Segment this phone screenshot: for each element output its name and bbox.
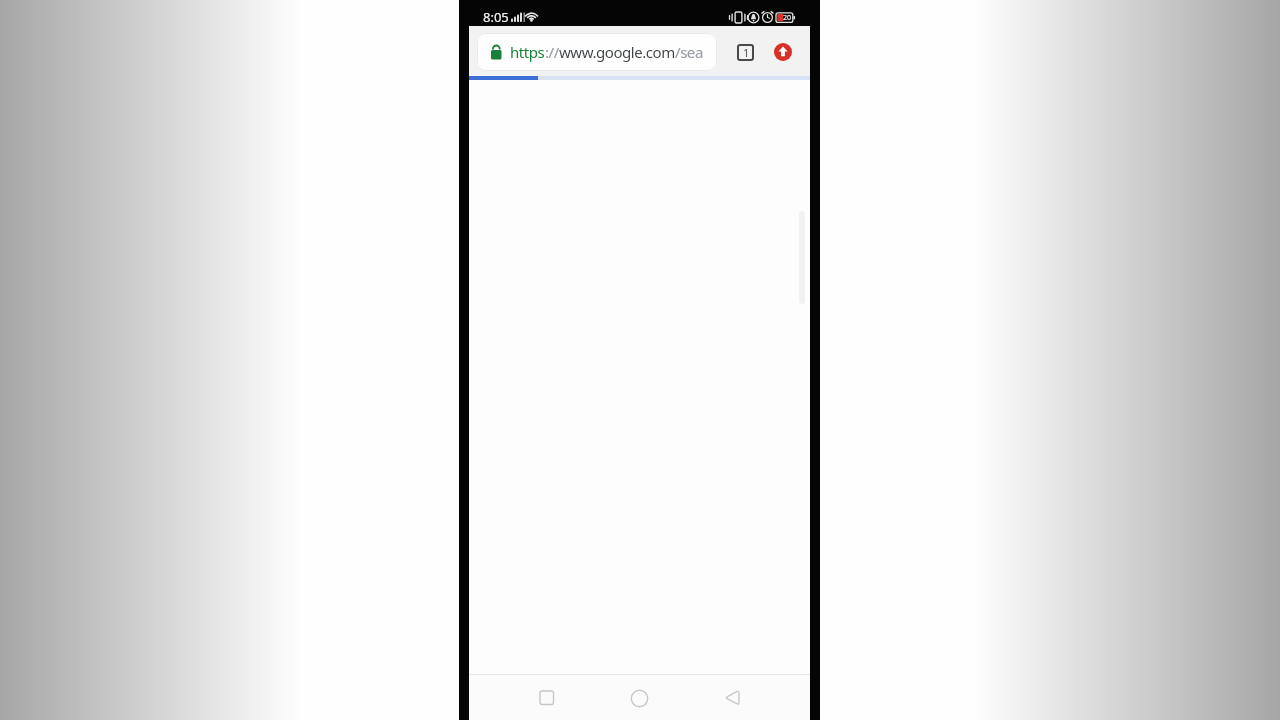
staticText: /sea [675,42,703,62]
staticText: 1 [743,45,749,60]
staticText: 20 [783,13,792,23]
button[interactable]: https [477,33,717,71]
staticText: https [510,42,545,62]
button[interactable]: 1 [737,44,754,61]
button[interactable] [619,678,659,718]
staticText: www.google.com [559,42,675,62]
staticText: :// [545,42,559,62]
button[interactable] [527,678,567,718]
button[interactable] [712,678,752,718]
staticText: 8:05 [483,8,509,26]
button[interactable] [774,43,792,61]
